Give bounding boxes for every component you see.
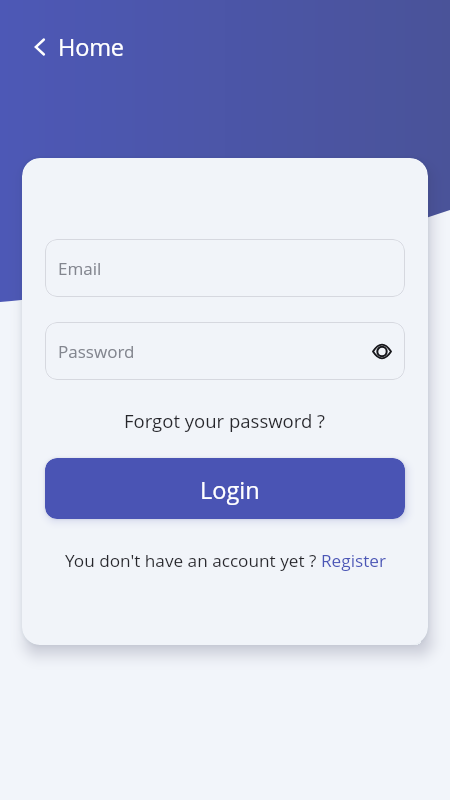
staticText: Email [58, 257, 102, 280]
button[interactable]: Register [321, 549, 386, 572]
staticText: You don't have an account yet ? [65, 549, 321, 572]
button[interactable]: Email [45, 239, 405, 297]
button[interactable] [369, 338, 395, 364]
staticText: Login [200, 474, 260, 506]
button[interactable]: Login [45, 458, 405, 519]
staticText: Password [58, 340, 135, 363]
staticText: Home [58, 31, 124, 63]
button[interactable]: Forgot your password ? [124, 408, 326, 433]
button[interactable]: Home [33, 31, 124, 63]
button[interactable]: Password [45, 322, 405, 380]
